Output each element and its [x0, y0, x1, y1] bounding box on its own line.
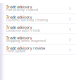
- button[interactable]: Trade advisory: [0, 3, 76, 13]
- staticText: Customs backlog clearing: [6, 18, 48, 22]
- staticText: Port activity slowed: [6, 7, 38, 12]
- button[interactable]: Trade advisory: [0, 24, 76, 34]
- staticText: Trade advisory: [6, 14, 32, 20]
- staticText: Trade advisory: [6, 35, 32, 40]
- button[interactable]: Trade advisory: [0, 13, 76, 23]
- staticText: Trade advisory: [6, 25, 32, 30]
- staticText: ›: [69, 3, 71, 13]
- staticText: ›: [69, 45, 71, 54]
- button[interactable]: Trade advisory: [0, 34, 76, 44]
- staticText: Shipping lanes reopened: [6, 39, 46, 43]
- staticText: Tariff update: [6, 49, 26, 53]
- staticText: ›: [69, 34, 71, 44]
- button[interactable]: Trade advisory review: [0, 44, 76, 54]
- staticText: ›: [69, 24, 71, 33]
- staticText: ›: [69, 14, 71, 23]
- staticText: Trade advisory: [6, 4, 32, 9]
- staticText: Container rates climb: [6, 28, 40, 33]
- staticText: Trade advisory review: [6, 45, 45, 51]
